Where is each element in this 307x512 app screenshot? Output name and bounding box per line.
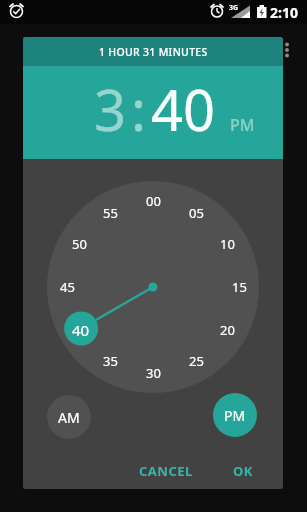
button[interactable]: 25 <box>181 352 211 370</box>
button[interactable]: 35 <box>95 352 125 370</box>
button[interactable]: 3 <box>94 71 127 147</box>
staticText: 30 <box>146 364 161 382</box>
button[interactable]: 10 <box>212 235 242 253</box>
staticText: 20 <box>220 321 235 339</box>
button[interactable]: 45 <box>52 278 82 296</box>
button[interactable]: 1 HOUR 31 MINUTES <box>23 37 283 66</box>
staticText: 1 HOUR 31 MINUTES <box>99 45 208 59</box>
button[interactable]: 05 <box>181 204 211 222</box>
staticText: 55 <box>103 204 118 222</box>
button[interactable]: OK <box>221 450 265 489</box>
staticText: CANCEL <box>139 462 193 480</box>
button[interactable]: 55 <box>95 204 125 222</box>
staticText: 50 <box>72 235 87 253</box>
button[interactable]: CANCEL <box>127 450 221 489</box>
staticText: 25 <box>189 352 204 370</box>
staticText: PM <box>224 406 246 425</box>
button[interactable]: 50 <box>64 235 94 253</box>
staticText: 15 <box>232 278 247 296</box>
staticText: OK <box>233 462 253 480</box>
staticText: 2:10 <box>270 3 298 22</box>
button[interactable]: 40 <box>66 320 96 338</box>
staticText: 45 <box>60 278 75 296</box>
button[interactable]: 40 <box>151 71 216 147</box>
staticText: : <box>131 71 147 147</box>
button[interactable]: 20 <box>212 321 242 339</box>
button[interactable]: 00 <box>138 192 168 210</box>
button[interactable]: 30 <box>138 364 168 382</box>
button[interactable]: AM <box>47 395 91 439</box>
button[interactable]: 15 <box>224 278 254 296</box>
staticText: 35 <box>103 352 118 370</box>
staticText: PM <box>230 114 255 136</box>
staticText: 40 <box>72 320 90 338</box>
staticText: 05 <box>189 204 204 222</box>
staticText: AM <box>58 408 80 427</box>
button[interactable]: PM <box>213 393 257 437</box>
staticText: 10 <box>220 235 235 253</box>
staticText: 00 <box>146 192 161 210</box>
staticText: 3G <box>229 3 239 13</box>
